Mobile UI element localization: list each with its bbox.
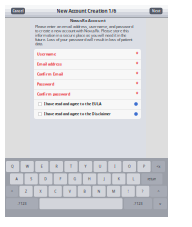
- button[interactable]: V: [63, 186, 76, 197]
- button[interactable]: [0, 0, 192, 227]
- button[interactable]: ^: [6, 186, 18, 197]
- staticText: I have read and agree to the Disclaimer: [44, 112, 111, 116]
- button[interactable]: F: [54, 173, 67, 184]
- staticText: *: [136, 51, 138, 57]
- button[interactable]: M: [107, 186, 120, 197]
- button[interactable]: [0, 0, 192, 227]
- button[interactable]: A: [10, 173, 23, 184]
- staticText: X: [40, 189, 42, 194]
- button[interactable]: [0, 0, 192, 227]
- button[interactable]: K: [112, 173, 125, 184]
- button[interactable]: .?123: [6, 198, 38, 209]
- button[interactable]: [0, 0, 192, 227]
- staticText: P: [143, 164, 145, 169]
- staticText: U: [99, 164, 102, 169]
- staticText: Please enter an email address, username,…: [35, 24, 133, 29]
- staticText: !: [128, 189, 129, 194]
- button[interactable]: Q: [6, 161, 19, 172]
- staticText: Z: [25, 189, 27, 194]
- staticText: Next: [152, 9, 160, 13]
- button[interactable]: U: [94, 161, 107, 172]
- button[interactable]: [0, 0, 192, 227]
- staticText: ^: [11, 189, 13, 194]
- staticText: future. Loss of your password will resul…: [35, 37, 132, 42]
- staticText: I have read and agree to the EULA: [44, 102, 101, 106]
- button[interactable]: O: [123, 161, 136, 172]
- staticText: *: [136, 61, 138, 67]
- button[interactable]: L: [127, 173, 140, 184]
- staticText: R: [55, 164, 57, 169]
- button[interactable]: [0, 0, 192, 227]
- staticText: Y: [85, 164, 87, 169]
- staticText: V: [69, 189, 71, 194]
- button[interactable]: N: [92, 186, 106, 197]
- button[interactable]: <x: [152, 161, 165, 172]
- button[interactable]: X: [34, 186, 47, 197]
- button[interactable]: G: [68, 173, 82, 184]
- button[interactable]: E: [35, 161, 48, 172]
- staticText: H: [88, 176, 91, 181]
- button[interactable]: v: [153, 198, 167, 209]
- staticText: D: [44, 176, 47, 181]
- button[interactable]: return: [141, 173, 162, 184]
- staticText: return: [147, 176, 156, 181]
- staticText: W: [26, 164, 29, 169]
- staticText: F: [59, 176, 61, 181]
- staticText: I: [114, 164, 115, 169]
- button[interactable]: H: [83, 173, 96, 184]
- staticText: T: [70, 164, 72, 169]
- staticText: .?123: [17, 201, 26, 206]
- staticText: <x: [156, 164, 160, 169]
- staticText: O: [128, 164, 131, 169]
- staticText: .?123: [133, 201, 142, 206]
- staticText: G: [73, 176, 76, 181]
- button[interactable]: Z: [19, 186, 33, 197]
- button[interactable]: D: [39, 173, 52, 184]
- staticText: *: [136, 81, 138, 87]
- staticText: Email address: [37, 61, 62, 67]
- staticText: information in a secure place as you wil…: [35, 32, 126, 38]
- staticText: v: [159, 201, 161, 206]
- button[interactable]: B: [78, 186, 91, 197]
- button[interactable]: J: [98, 173, 111, 184]
- staticText: *: [136, 91, 138, 97]
- button[interactable]: [0, 0, 192, 227]
- button[interactable]: ?: [136, 186, 149, 197]
- button[interactable]: C: [49, 186, 62, 197]
- staticText: N: [97, 189, 100, 194]
- staticText: ^: [157, 189, 159, 194]
- staticText: New Account Creation 1/6: [56, 8, 116, 14]
- button[interactable]: R: [50, 161, 63, 172]
- staticText: to create a new account with NovusRx. Pl…: [35, 28, 129, 33]
- button[interactable]: Y: [79, 161, 92, 172]
- staticText: M: [112, 189, 115, 194]
- button[interactable]: W: [21, 161, 34, 172]
- staticText: S: [30, 176, 32, 181]
- button[interactable]: [39, 198, 122, 209]
- staticText: *: [136, 71, 138, 77]
- button[interactable]: .?123: [124, 198, 152, 209]
- button[interactable]: P: [137, 161, 151, 172]
- button[interactable]: !: [122, 186, 135, 197]
- staticText: ?: [142, 189, 144, 194]
- button[interactable]: Next: [149, 8, 162, 14]
- staticText: K: [118, 176, 120, 181]
- staticText: Cancel: [12, 9, 23, 13]
- button[interactable]: ^: [150, 186, 167, 197]
- staticText: Username: [37, 51, 56, 57]
- staticText: Confirm password: [37, 91, 70, 97]
- staticText: data.: [35, 41, 43, 46]
- staticText: Q: [11, 164, 14, 169]
- staticText: B: [83, 189, 85, 194]
- staticText: Password: [37, 81, 54, 87]
- staticText: J: [104, 176, 105, 181]
- staticText: NovusRx Account: [70, 18, 106, 23]
- staticText: C: [54, 189, 56, 194]
- button[interactable]: S: [25, 173, 38, 184]
- staticText: A: [16, 176, 18, 181]
- button[interactable]: I: [108, 161, 121, 172]
- staticText: L: [132, 176, 134, 181]
- button[interactable]: T: [64, 161, 78, 172]
- button[interactable]: Cancel: [11, 8, 25, 14]
- staticText: Confirm Email: [37, 71, 63, 77]
